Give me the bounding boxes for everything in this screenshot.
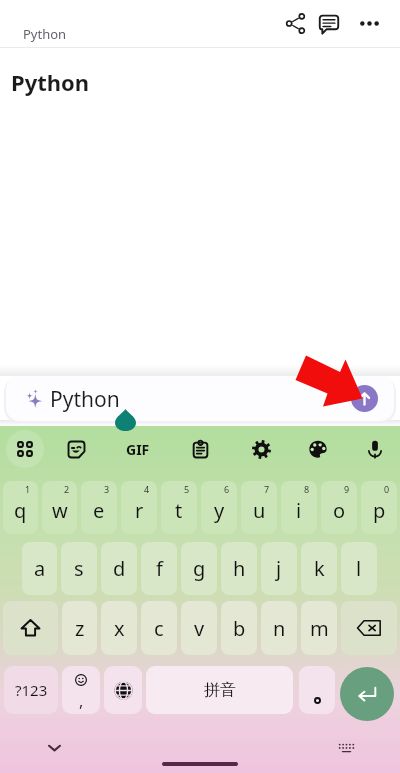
button[interactable]: w <box>42 481 77 534</box>
button[interactable]: d <box>101 542 137 595</box>
staticText: 2 <box>64 483 70 495</box>
button[interactable]: r <box>121 481 157 534</box>
button[interactable]: , <box>62 666 100 714</box>
button[interactable]: m <box>301 601 337 655</box>
button[interactable]: 拼音 <box>146 666 293 714</box>
button[interactable]: h <box>221 542 257 595</box>
button[interactable]: v <box>181 601 217 655</box>
button[interactable]: Theme <box>299 430 337 468</box>
staticText: d <box>113 555 126 582</box>
button[interactable]: Backspace <box>341 601 397 655</box>
staticText: , <box>79 690 84 712</box>
staticText: 4 <box>144 483 150 495</box>
button[interactable]: z <box>62 601 97 655</box>
staticText: x <box>114 615 125 642</box>
staticText: v <box>194 615 205 642</box>
staticText: w <box>52 497 68 524</box>
staticText: GIF <box>126 440 150 459</box>
button[interactable]: p <box>361 481 397 534</box>
staticText: y <box>214 497 225 524</box>
button[interactable]: c <box>141 601 177 655</box>
staticText: r <box>135 497 144 524</box>
button[interactable]: n <box>261 601 297 655</box>
button[interactable]: q <box>3 481 38 534</box>
staticText: 3 <box>104 483 110 495</box>
staticText: c <box>154 615 164 642</box>
staticText: k <box>314 555 325 582</box>
staticText: 6 <box>224 483 230 495</box>
button[interactable]: Settings <box>242 430 280 468</box>
button[interactable]: a <box>22 542 57 595</box>
button[interactable]: Share <box>276 4 314 42</box>
button[interactable]: Clipboard <box>181 430 219 468</box>
button[interactable]: y <box>201 481 237 534</box>
button[interactable]: GIF <box>119 430 157 468</box>
button[interactable]: o <box>321 481 357 534</box>
button[interactable]: j <box>261 542 297 595</box>
staticText: 8 <box>304 483 310 495</box>
staticText: a <box>34 555 46 582</box>
button[interactable]: Voice input <box>356 430 394 468</box>
staticText: m <box>310 615 329 642</box>
staticText: o <box>333 497 346 524</box>
button[interactable]: f <box>141 542 177 595</box>
button[interactable]: Enter <box>340 667 394 721</box>
staticText: Python <box>50 385 120 414</box>
staticText: u <box>253 497 266 524</box>
button[interactable]: s <box>61 542 97 595</box>
button[interactable]: ?123 <box>4 666 58 714</box>
staticText: 1 <box>25 483 31 495</box>
button[interactable]: Comment <box>310 5 348 43</box>
button[interactable]: More options <box>350 4 388 42</box>
button[interactable]: i <box>281 481 317 534</box>
staticText: g <box>193 555 206 582</box>
staticText: e <box>93 497 105 524</box>
staticText: Python <box>23 25 67 43</box>
button[interactable]: Language <box>104 666 142 714</box>
staticText: 9 <box>344 483 350 495</box>
button[interactable]: Send <box>351 385 378 412</box>
button[interactable]: e <box>81 481 117 534</box>
button[interactable]: Stickers <box>57 430 95 468</box>
staticText: 5 <box>184 483 190 495</box>
button[interactable]: k <box>301 542 337 595</box>
staticText: j <box>276 555 282 582</box>
staticText: ?123 <box>15 680 48 700</box>
staticText: 拼音 <box>204 680 236 700</box>
button[interactable]: Python <box>6 376 394 421</box>
button[interactable]: x <box>101 601 137 655</box>
staticText: z <box>75 615 85 642</box>
staticText: Python <box>11 67 90 97</box>
staticText: l <box>356 555 362 582</box>
button[interactable]: b <box>221 601 257 655</box>
button[interactable]: Hide keyboard <box>38 732 70 764</box>
button[interactable]: g <box>181 542 217 595</box>
staticText: q <box>14 497 27 524</box>
staticText: b <box>233 615 246 642</box>
staticText: p <box>373 497 386 524</box>
staticText: i <box>296 497 302 524</box>
button[interactable]: u <box>241 481 277 534</box>
button[interactable]: t <box>161 481 197 534</box>
staticText: n <box>273 615 286 642</box>
staticText: s <box>74 555 84 582</box>
button[interactable] <box>299 666 335 714</box>
staticText: 0 <box>384 483 390 495</box>
staticText: t <box>175 497 183 524</box>
button[interactable]: Apps <box>6 430 44 468</box>
staticText: f <box>156 555 163 582</box>
staticText: 7 <box>264 483 270 495</box>
button[interactable]: Shift <box>3 601 58 655</box>
button[interactable]: Switch keyboard <box>330 732 362 764</box>
button[interactable]: l <box>341 542 377 595</box>
staticText: h <box>233 555 246 582</box>
